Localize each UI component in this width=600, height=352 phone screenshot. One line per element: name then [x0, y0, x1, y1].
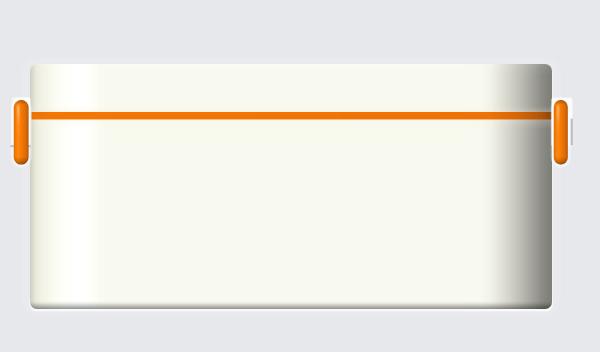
other: Storage container: [0, 0, 600, 352]
button[interactable]: Open left latch: [8, 95, 34, 167]
button[interactable]: Open right latch: [549, 95, 575, 167]
